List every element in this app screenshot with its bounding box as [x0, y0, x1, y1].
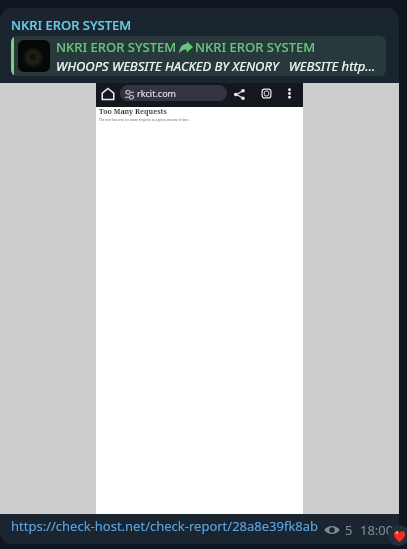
other: More options — [284, 88, 295, 99]
staticText: NKRI EROR SYSTEM — [195, 38, 316, 56]
other: Views — [324, 522, 340, 538]
staticText: Too Many Requests — [99, 107, 167, 117]
other: Share — [234, 89, 245, 100]
button[interactable]: NKRI EROR SYSTEM — [11, 36, 386, 76]
other: Reading mode — [261, 88, 272, 99]
staticText: 18:00 — [360, 521, 394, 539]
other: Home — [102, 88, 114, 100]
staticText: rkcit.com — [137, 87, 177, 99]
staticText: WHOOPS WEBSITE HACKED BY XENORY WEBSITE … — [56, 57, 386, 75]
staticText: https://check-host.net/check-report/28a8… — [11, 517, 319, 535]
staticText: The user has sent too many requests in a… — [99, 118, 190, 122]
staticText: NKRI EROR SYSTEM — [11, 16, 132, 34]
staticText: NKRI EROR SYSTEM — [56, 38, 177, 56]
button[interactable]: NKRI EROR SYSTEM — [0, 8, 399, 544]
staticText: 5 — [345, 521, 353, 539]
button[interactable]: Heart reaction — [388, 525, 407, 546]
